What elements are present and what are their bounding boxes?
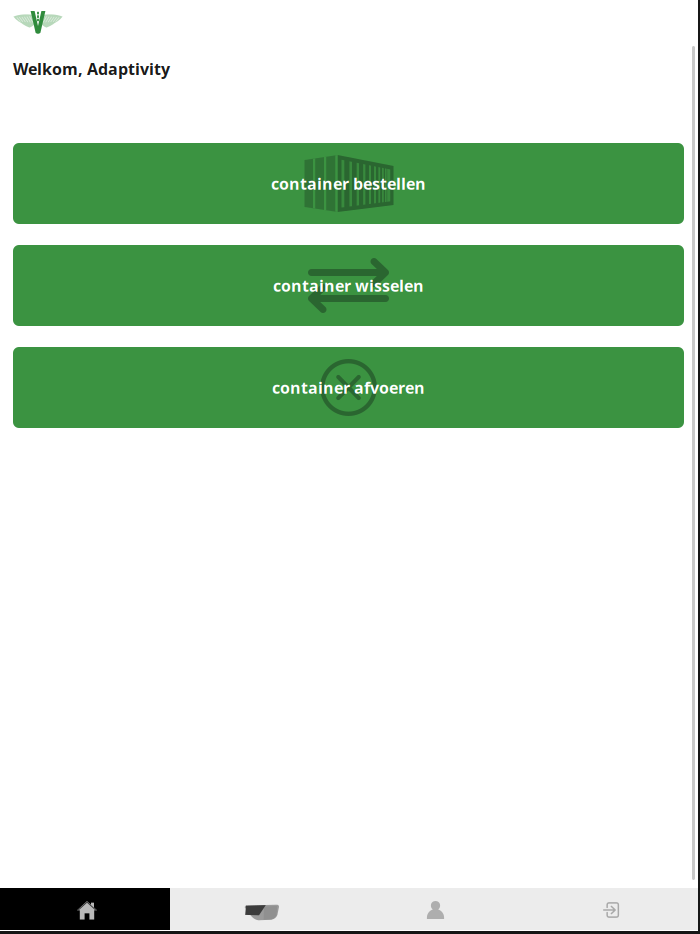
button[interactable]: container wisselen — [13, 245, 684, 326]
button[interactable]: Account — [348, 888, 523, 930]
button[interactable]: Containers — [174, 888, 349, 930]
button[interactable]: Home — [0, 888, 170, 930]
button[interactable]: container bestellen — [13, 143, 684, 224]
staticText: container wisselen — [273, 275, 424, 296]
staticText: container bestellen — [271, 173, 426, 194]
button[interactable]: Log out — [521, 888, 696, 930]
staticText: Welkom, Adaptivity — [13, 58, 170, 80]
staticText: container afvoeren — [272, 377, 425, 398]
button[interactable]: container afvoeren — [13, 347, 684, 428]
